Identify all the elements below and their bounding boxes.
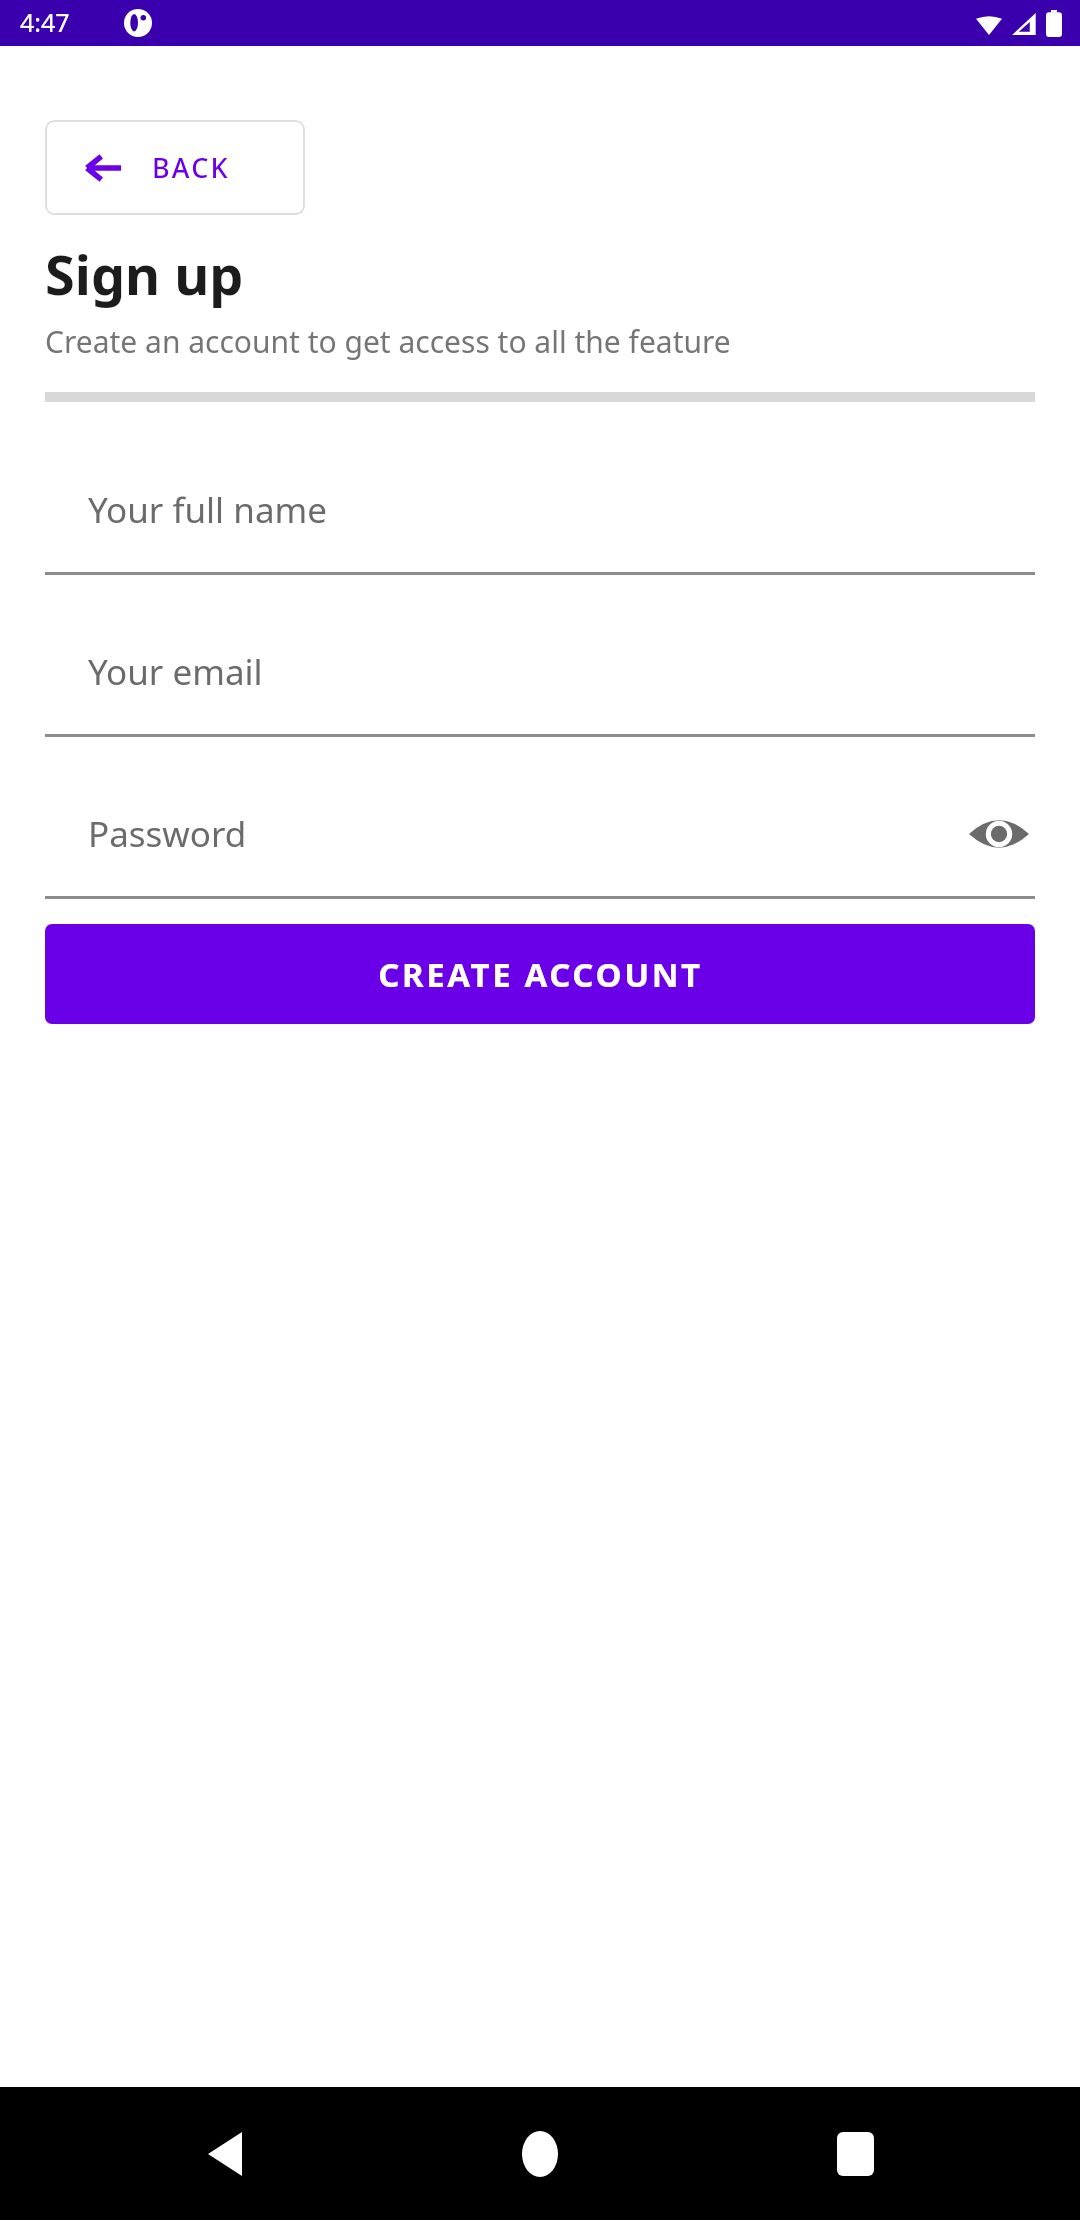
staticText: CREATE ACCOUNT <box>378 952 703 997</box>
button[interactable]: Your full name <box>45 447 1035 572</box>
button[interactable]: CREATE ACCOUNT <box>45 924 1035 1024</box>
button[interactable]: Back <box>180 2109 270 2199</box>
button[interactable]: Show password <box>963 798 1035 870</box>
staticText: Password <box>88 810 247 858</box>
button[interactable]: BACK <box>45 120 305 215</box>
button[interactable]: Recent apps <box>810 2109 900 2199</box>
button[interactable]: Your email <box>45 609 1035 734</box>
staticText: Sign up <box>45 237 244 311</box>
button[interactable]: Password <box>45 771 1035 896</box>
staticText: Your full name <box>88 486 327 534</box>
staticText: BACK <box>152 149 230 186</box>
staticText: 4:47 <box>20 5 70 39</box>
staticText: Create an account to get access to all t… <box>45 321 731 362</box>
button[interactable]: Home <box>495 2109 585 2199</box>
staticText: Your email <box>88 648 263 696</box>
